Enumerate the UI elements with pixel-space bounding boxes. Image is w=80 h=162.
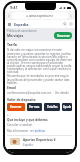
staticText: 9:41 (10, 5, 18, 10)
staticText: Expedia (14, 22, 29, 27)
staticText: Tarifa (7, 42, 17, 47)
button[interactable]: Reservar (7, 103, 25, 111)
staticText: + - (7, 113, 11, 117)
staticText: Mis viajes (7, 33, 24, 37)
staticText: confirmaciones@expedia.com.mx · Ver deta… (7, 91, 69, 95)
staticText: www.expedia.mx (29, 14, 54, 18)
button[interactable]: Reservar (54, 32, 72, 39)
staticText: Valor de deposito (7, 97, 36, 101)
button[interactable]: Ver mas (27, 103, 42, 111)
staticText: Mas informacion (7, 129, 30, 133)
staticText: Cancelar o cambiar (7, 123, 33, 127)
staticText: Reservar (57, 34, 70, 38)
button[interactable]: Account (69, 22, 73, 26)
staticText: Ayuda (63, 105, 72, 109)
staticText: Si decides no viajar con nosotros en est… (7, 48, 72, 73)
button[interactable]: More options (69, 14, 73, 18)
button[interactable]: Ayuda (62, 103, 72, 111)
staticText: Email (7, 86, 16, 90)
staticText: Politica de cancelacion (7, 29, 37, 33)
staticText: Que incluye y que deberas (7, 118, 48, 122)
button[interactable]: Detalles (44, 103, 60, 111)
button[interactable]: Back (7, 14, 11, 18)
staticText: ver politicas (30, 129, 46, 133)
staticText: Ver mas (29, 105, 40, 109)
staticText: Recuerda que el reembolso se procesa seg… (7, 74, 72, 84)
button[interactable]: Menu (7, 22, 12, 27)
staticText: Aportes Deportivos 6 (23, 138, 56, 142)
staticText: Detalles (47, 105, 58, 109)
staticText: Expedia (23, 143, 33, 147)
button[interactable]: Search (63, 22, 67, 26)
staticText: Reservar (10, 105, 22, 109)
button[interactable]: Address bar (12, 12, 68, 19)
